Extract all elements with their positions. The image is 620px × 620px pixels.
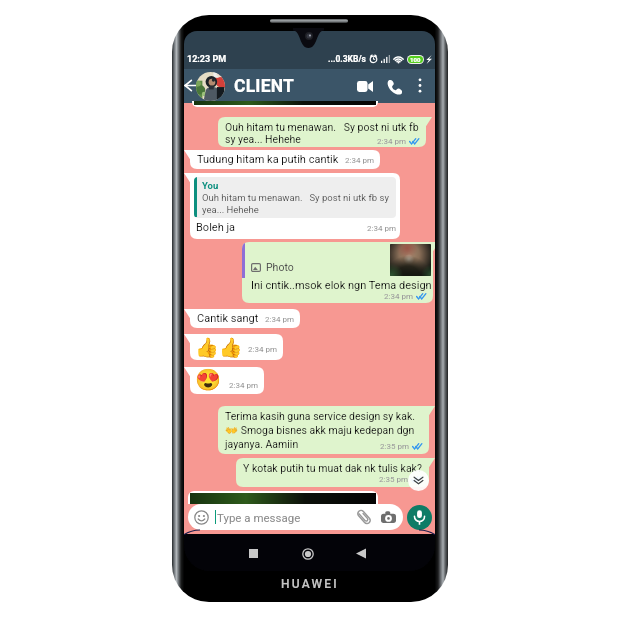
button[interactable]: Emoji <box>188 504 403 530</box>
staticText: CLIENT <box>234 76 295 97</box>
button[interactable]: Cantik sangt <box>184 309 300 328</box>
button[interactable]: Recents <box>242 542 265 565</box>
staticText: 2:35 pm <box>379 475 408 484</box>
button[interactable]: Back <box>349 542 372 565</box>
staticText: Tudung hitam ka putih cantik <box>197 153 339 166</box>
button[interactable]: Voice message <box>407 505 432 530</box>
staticText: You <box>202 180 219 191</box>
staticText: 2:34 pm <box>229 381 258 390</box>
button[interactable]: Profile photo <box>196 72 225 101</box>
button[interactable]: Video call <box>353 75 376 98</box>
button[interactable]: 👍👍 <box>184 334 283 360</box>
staticText: 2:34 pm <box>384 292 413 301</box>
staticText: 😍 <box>195 368 222 393</box>
staticText: Ouh hitam tu menawan. Sy post ni utk fb … <box>202 192 392 215</box>
staticText: 100 <box>410 56 421 63</box>
staticText: Type a message <box>217 511 301 524</box>
button[interactable]: Home <box>296 542 319 565</box>
other: Camera <box>381 511 396 524</box>
button[interactable]: More options <box>409 75 430 96</box>
button[interactable]: Tudung hitam ka putih cantik <box>184 150 380 169</box>
button[interactable]: Ouh hitam tu menawan. Sy post ni utk fb … <box>218 117 432 147</box>
staticText: 2:34 pm <box>248 345 277 354</box>
staticText: 2:34 pm <box>367 224 396 233</box>
staticText: 12:23 PM <box>187 54 227 65</box>
other: Attach <box>356 509 372 525</box>
button[interactable]: Terima kasih guna service design sy kak.… <box>218 406 435 454</box>
staticText: Cantik sangt <box>197 312 259 325</box>
button[interactable]: 😍 <box>184 367 264 394</box>
staticText: Y kotak putih tu muat dak nk tulis kak? <box>243 462 422 474</box>
staticText: ...0.3KB/s <box>328 54 366 64</box>
staticText: Ini cntik..msok elok ngn Tema design <box>251 279 432 292</box>
staticText: Photo <box>266 261 294 273</box>
staticText: 2:34 pm <box>345 156 374 165</box>
button[interactable]: You <box>184 173 400 239</box>
button[interactable]: Y kotak putih tu muat dak nk tulis kak? <box>236 458 435 487</box>
staticText: 👍👍 <box>195 336 243 358</box>
staticText: Ouh hitam tu menawan. Sy post ni utk fb … <box>225 121 420 146</box>
staticText: Terima kasih guna service design sy kak.… <box>225 410 423 451</box>
staticText: HUAWEI <box>281 577 339 591</box>
staticText: 2:35 pm <box>380 442 409 451</box>
button[interactable]: Photo <box>242 242 435 303</box>
staticText: Boleh ja <box>196 221 236 234</box>
other: Emoji <box>194 510 209 525</box>
staticText: 2:34 pm <box>265 315 294 324</box>
button[interactable]: Call <box>383 75 406 98</box>
button[interactable]: Back <box>184 74 203 97</box>
staticText: 2:34 pm <box>377 137 406 146</box>
button[interactable]: Scroll to bottom <box>408 470 429 491</box>
